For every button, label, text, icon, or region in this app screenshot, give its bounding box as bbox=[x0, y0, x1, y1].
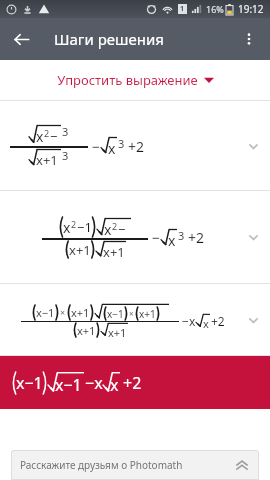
staticText: x bbox=[108, 139, 116, 156]
staticText: x bbox=[110, 374, 119, 395]
staticText: −1 bbox=[77, 218, 92, 236]
staticText: x+1 bbox=[103, 243, 125, 259]
staticText: − bbox=[152, 228, 161, 247]
staticText: x−1 bbox=[107, 307, 124, 321]
staticText: x+1 bbox=[69, 241, 91, 259]
staticText: 3 bbox=[62, 124, 69, 139]
staticText: x+1 bbox=[77, 323, 96, 338]
staticText: − bbox=[92, 137, 101, 156]
staticText: 3 bbox=[118, 136, 125, 151]
staticText: 19:12 bbox=[238, 2, 264, 16]
staticText: 1 bbox=[180, 4, 185, 14]
staticText: +2 bbox=[211, 313, 225, 329]
staticText: x bbox=[63, 218, 71, 237]
button[interactable]: x−1 bbox=[0, 356, 270, 409]
staticText: × bbox=[60, 306, 66, 318]
staticText: 16% bbox=[206, 3, 224, 15]
staticText: x bbox=[189, 313, 196, 329]
staticText: 2 bbox=[44, 127, 50, 139]
staticText: Расскажите друзьям о Photomath bbox=[20, 458, 183, 472]
staticText: −x bbox=[85, 372, 103, 394]
button[interactable]: x bbox=[0, 191, 270, 284]
staticText: x−1 bbox=[55, 374, 82, 395]
staticText: x+1 bbox=[108, 325, 127, 338]
button[interactable]: Back bbox=[0, 18, 42, 60]
staticText: +2 bbox=[123, 372, 142, 394]
staticText: 2 bbox=[112, 220, 118, 232]
staticText: +2 bbox=[188, 228, 205, 247]
staticText: x+1 bbox=[71, 305, 90, 320]
staticText: 2 bbox=[71, 218, 77, 230]
staticText: × bbox=[129, 308, 134, 319]
staticText: x−1 bbox=[16, 372, 43, 394]
staticText: 3 bbox=[178, 228, 185, 243]
button[interactable]: More options bbox=[228, 18, 270, 60]
button[interactable]: Расскажите друзьям о Photomath bbox=[11, 450, 259, 480]
staticText: x+1 bbox=[36, 151, 58, 168]
staticText: − bbox=[182, 313, 189, 329]
staticText: Упростить выражение bbox=[57, 71, 198, 89]
staticText: +2 bbox=[128, 137, 145, 156]
staticText: −1 bbox=[118, 220, 132, 238]
staticText: x−1 bbox=[36, 305, 55, 320]
staticText: x+1 bbox=[139, 307, 156, 321]
staticText: Шаги решения bbox=[54, 29, 164, 49]
button[interactable]: Упростить выражение bbox=[0, 60, 270, 100]
staticText: x bbox=[36, 127, 44, 146]
staticText: x bbox=[203, 316, 209, 329]
button[interactable]: x bbox=[0, 101, 270, 191]
button[interactable]: x−1 bbox=[0, 284, 270, 356]
staticText: −1 bbox=[50, 127, 62, 146]
staticText: x bbox=[104, 220, 112, 238]
staticText: 3 bbox=[62, 148, 69, 163]
staticText: x bbox=[168, 231, 176, 248]
